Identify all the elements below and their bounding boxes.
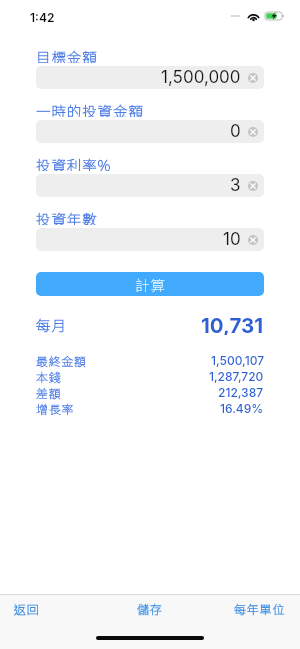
staticText: 3 bbox=[230, 175, 241, 196]
staticText: 目標金額 bbox=[36, 46, 98, 63]
button[interactable]: 返回 bbox=[0, 595, 100, 621]
staticText: 1,287,720 bbox=[209, 369, 264, 384]
button[interactable]: 計算 bbox=[36, 272, 264, 296]
button[interactable]: 每年單位 bbox=[200, 595, 300, 621]
staticText: 每年單位 bbox=[234, 600, 286, 617]
staticText: 0 bbox=[230, 121, 241, 142]
button[interactable]: 10 bbox=[36, 228, 264, 251]
staticText: 16.49% bbox=[220, 401, 264, 416]
staticText: 投資年數 bbox=[36, 208, 98, 225]
staticText: 一時的投資金額 bbox=[36, 100, 144, 117]
button[interactable]: 1,500,000 bbox=[36, 66, 264, 89]
staticText: 儲存 bbox=[137, 600, 163, 617]
staticText: 10,731 bbox=[201, 313, 264, 335]
staticText: 1,500,107 bbox=[211, 353, 264, 368]
staticText: 差額 bbox=[36, 384, 62, 400]
button[interactable]: 0 bbox=[36, 120, 264, 143]
staticText: 最終金額 bbox=[36, 352, 87, 368]
other: Home indicator bbox=[96, 636, 204, 640]
staticText: 每月 bbox=[36, 314, 67, 335]
staticText: 1:42 bbox=[30, 10, 55, 25]
button[interactable]: 儲存 bbox=[100, 595, 200, 621]
staticText: 返回 bbox=[14, 600, 40, 617]
button[interactable]: 3 bbox=[36, 174, 264, 197]
staticText: 計算 bbox=[135, 274, 166, 295]
staticText: 投資利率% bbox=[36, 154, 112, 171]
staticText: 10 bbox=[223, 229, 241, 250]
staticText: 1,500,000 bbox=[161, 67, 241, 88]
staticText: 本錢 bbox=[36, 368, 62, 384]
staticText: 增長率 bbox=[36, 400, 75, 416]
staticText: 212,387 bbox=[218, 385, 264, 400]
